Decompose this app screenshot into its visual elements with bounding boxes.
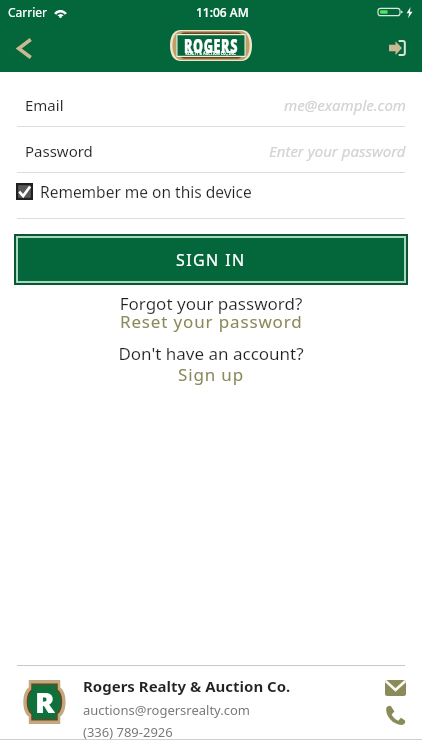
staticText: Remember me on this device (40, 181, 252, 202)
button[interactable]: Sign up (0, 363, 422, 386)
staticText: Sign up (178, 363, 245, 386)
staticText: Carrier (8, 4, 48, 20)
button[interactable]: Password (0, 141, 422, 161)
button[interactable]: Email us (375, 670, 415, 706)
staticText: Don't have an account? (0, 342, 422, 365)
button[interactable]: Reset your password (0, 310, 422, 333)
staticText: me@example.com (284, 95, 406, 115)
staticText: Forgot your password? (0, 292, 422, 315)
staticText: (336) 789-2926 (83, 723, 173, 741)
button[interactable]: Email (0, 95, 422, 115)
staticText: 11:06 AM (196, 4, 249, 20)
staticText: Reset your password (120, 310, 303, 333)
staticText: Email (25, 95, 64, 115)
staticText: REALTY & AUCTION CO., INC. (177, 49, 245, 56)
staticText: Rogers Realty & Auction Co. (83, 676, 291, 696)
staticText: ROGERS (163, 33, 259, 60)
staticText: auctions@rogersrealty.com (83, 701, 250, 719)
staticText: Password (25, 141, 93, 161)
staticText: Enter your password (269, 141, 406, 161)
button[interactable]: SIGN IN (18, 238, 404, 281)
button[interactable]: Back (0, 24, 48, 72)
button[interactable]: Call us (375, 696, 415, 734)
button[interactable]: Remember me on this device (0, 180, 422, 203)
staticText: R (35, 682, 55, 721)
staticText: SIGN IN (176, 249, 246, 271)
button[interactable]: Sign in (374, 24, 422, 72)
